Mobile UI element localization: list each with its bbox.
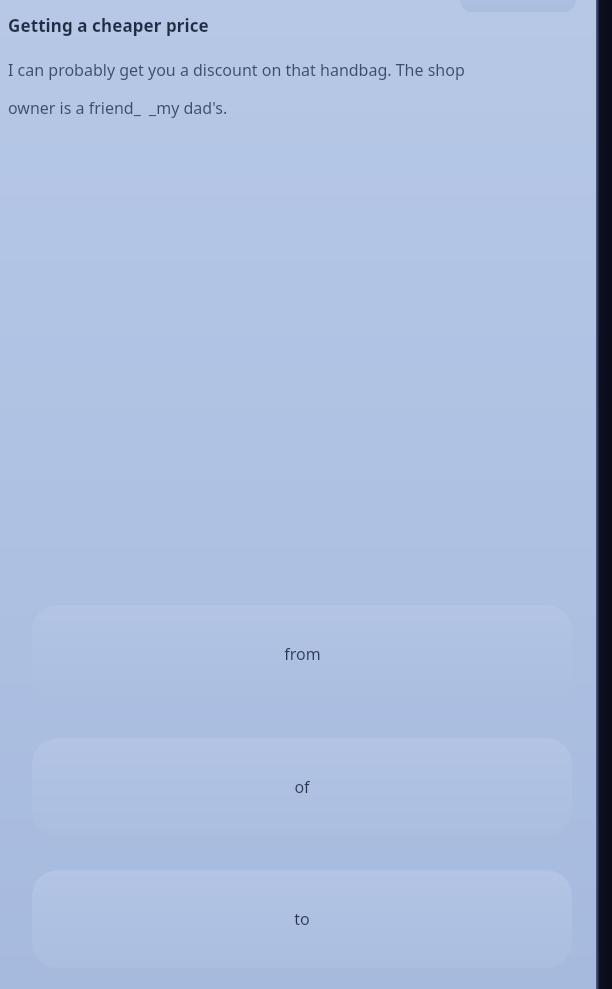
staticText: from	[284, 643, 321, 665]
staticText: of	[294, 776, 310, 798]
staticText: to	[294, 908, 310, 930]
staticText: Getting a cheaper price	[8, 14, 209, 37]
button[interactable]: of	[32, 738, 572, 836]
staticText: owner is a friend_ _my dad's.	[8, 97, 228, 119]
button[interactable]: from	[32, 605, 572, 703]
button[interactable]: to	[32, 870, 572, 968]
staticText: I can probably get you a discount on tha…	[8, 59, 465, 81]
